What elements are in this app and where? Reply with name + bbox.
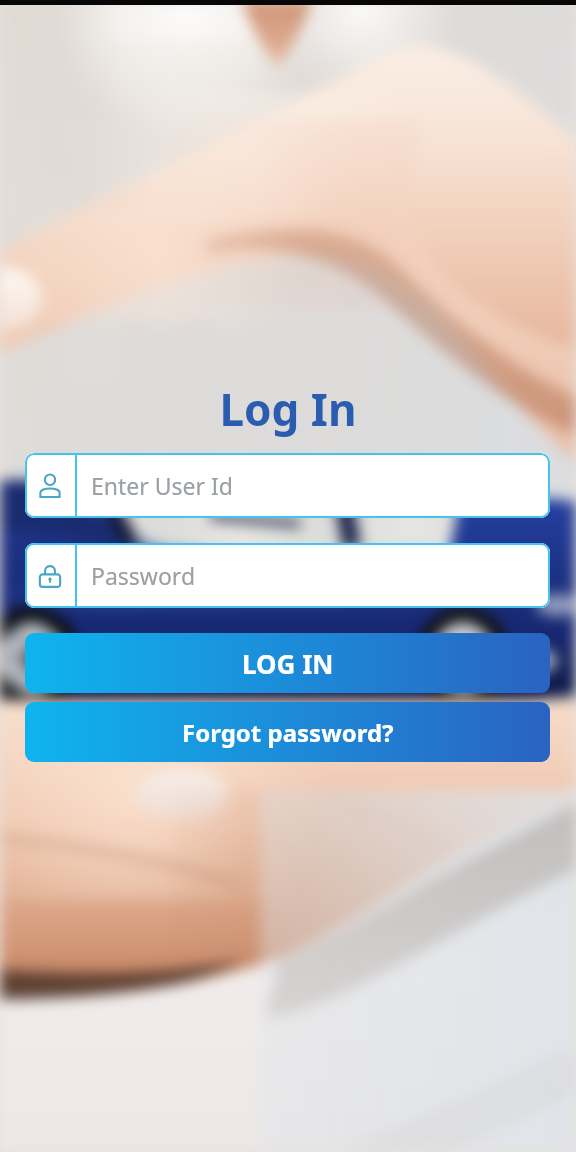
staticText: Password bbox=[91, 560, 196, 591]
staticText: LOG IN bbox=[242, 646, 334, 681]
staticText: Forgot password? bbox=[182, 716, 394, 749]
button[interactable]: LOG IN bbox=[25, 633, 550, 693]
button[interactable]: Password bbox=[25, 543, 550, 608]
other: Password bbox=[25, 543, 75, 608]
staticText: Enter User Id bbox=[91, 470, 233, 501]
other: User bbox=[25, 453, 75, 518]
staticText: Log In bbox=[0, 379, 576, 439]
button[interactable]: User bbox=[25, 453, 550, 518]
button[interactable]: Forgot password? bbox=[25, 702, 550, 762]
